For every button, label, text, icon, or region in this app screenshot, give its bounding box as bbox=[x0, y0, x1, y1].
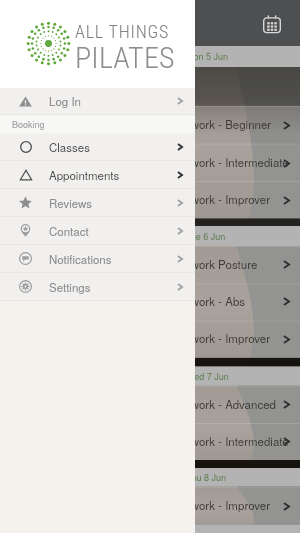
staticText: Wed 7 Jun bbox=[186, 370, 229, 383]
staticText: Tue 6 Jun bbox=[186, 230, 226, 243]
button[interactable]: Reviews bbox=[0, 189, 195, 216]
button[interactable]: Pilates Matwork - Advanced bbox=[0, 386, 300, 423]
button[interactable]: Settings bbox=[0, 273, 195, 300]
button[interactable]: Notifications bbox=[0, 245, 195, 272]
button[interactable]: Calendar bbox=[261, 13, 283, 35]
staticText: Pilates Matwork - Intermediate bbox=[134, 433, 289, 449]
staticText: Booking bbox=[12, 118, 45, 131]
button[interactable]: Pilates Matwork - Improver bbox=[0, 181, 300, 219]
staticText: Pilates Matwork - Advanced bbox=[134, 396, 276, 412]
staticText: Classes bbox=[49, 139, 90, 155]
staticText: Log In bbox=[49, 93, 81, 109]
staticText: ALL THINGS bbox=[75, 21, 170, 42]
staticText: Appointments bbox=[49, 167, 120, 183]
button[interactable]: Pilates Matwork - Improver bbox=[0, 487, 300, 525]
staticText: Settings bbox=[49, 279, 91, 295]
staticText: Pilates Matwork - Beginner bbox=[134, 116, 272, 132]
staticText: PILATES bbox=[75, 40, 175, 75]
staticText: Pilates Matwork - Intermediate bbox=[134, 154, 289, 170]
staticText: Reviews bbox=[49, 195, 92, 211]
button[interactable]: Pilates Matwork - Intermediate bbox=[0, 144, 300, 182]
button[interactable]: Log In bbox=[0, 88, 195, 114]
button[interactable]: Contact bbox=[0, 217, 195, 244]
staticText: Pilates Matwork - Improver bbox=[134, 330, 271, 346]
staticText: Pilates Matwork Posture bbox=[134, 256, 258, 272]
button[interactable]: Appointments bbox=[0, 161, 195, 188]
staticText: Pilates Matwork - Improver bbox=[134, 191, 271, 207]
button[interactable]: Pilates Matwork Posture bbox=[0, 246, 300, 283]
staticText: Notifications bbox=[49, 251, 112, 267]
button[interactable]: Classes bbox=[0, 133, 195, 160]
staticText: Pilates Matwork - Improver bbox=[134, 497, 271, 513]
button[interactable]: Pilates Matwork - Improver bbox=[0, 320, 300, 358]
button[interactable]: Pilates Matwork - Abs bbox=[0, 283, 300, 320]
button[interactable]: Pilates Matwork - Intermediate bbox=[0, 423, 300, 460]
staticText: Mon 5 Jun bbox=[186, 50, 229, 63]
button[interactable]: Pilates Matwork - Beginner bbox=[0, 106, 300, 144]
staticText: Pilates Matwork - Abs bbox=[134, 293, 246, 309]
staticText: Contact bbox=[49, 223, 89, 239]
staticText: Thu 8 Jun bbox=[186, 471, 227, 484]
